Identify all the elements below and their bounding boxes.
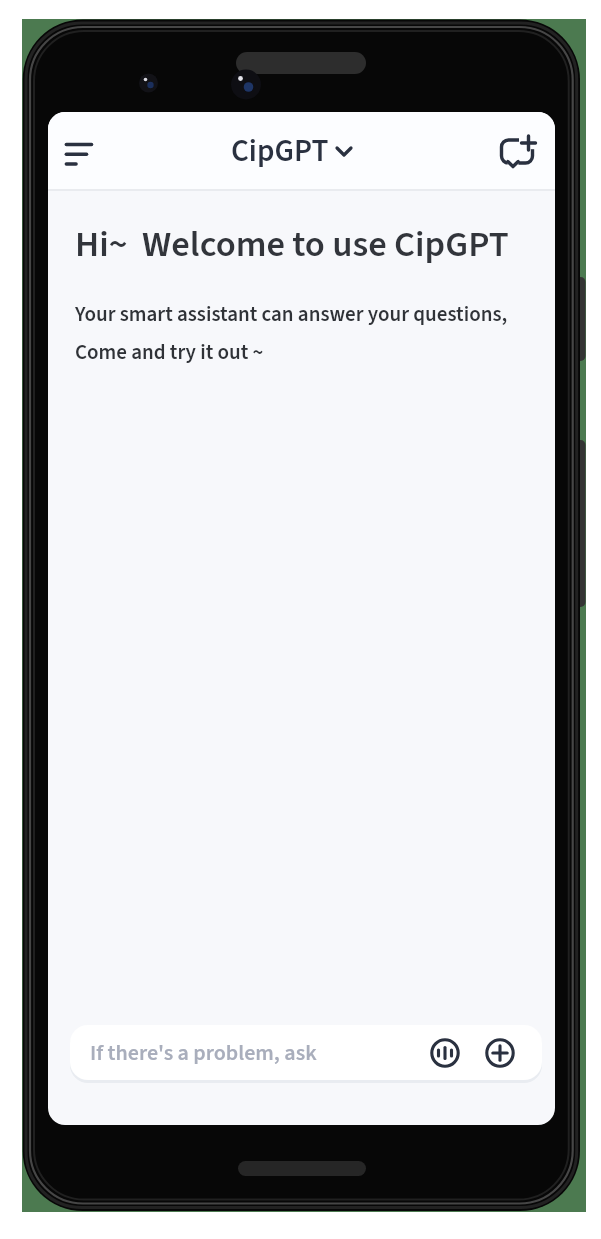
button[interactable]	[56, 128, 102, 174]
staticText: Hi~ Welcome to use CipGPT	[75, 219, 509, 271]
button[interactable]: If there's a problem, ask	[70, 1025, 542, 1080]
button[interactable]: CipGPT	[231, 129, 353, 173]
button[interactable]	[485, 1038, 515, 1068]
staticText: Come and try it out ~	[75, 337, 264, 367]
button[interactable]	[495, 129, 539, 173]
button[interactable]	[430, 1038, 460, 1068]
staticText: CipGPT	[231, 129, 329, 173]
staticText: If there's a problem, ask	[90, 1037, 317, 1068]
staticText: Your smart assistant can answer your que…	[75, 299, 508, 329]
